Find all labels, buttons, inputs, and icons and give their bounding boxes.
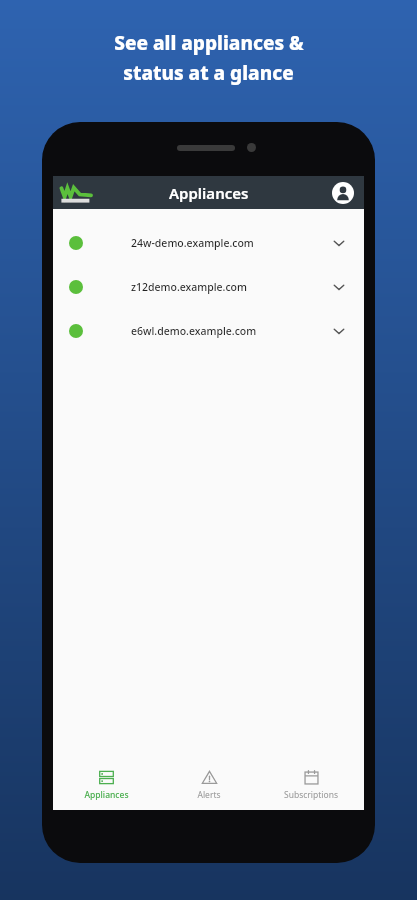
button[interactable]: Subscriptions	[261, 765, 361, 805]
button[interactable]: Logo	[59, 181, 99, 205]
staticText: Alerts	[197, 789, 221, 801]
staticText: z12demo.example.com	[131, 280, 247, 294]
staticText: status at a glance	[123, 60, 294, 86]
staticText: See all appliances &	[114, 30, 304, 56]
button[interactable]: e6wl.demo.example.com	[53, 309, 364, 353]
staticText: Appliances	[169, 183, 249, 203]
button[interactable]: 24w-demo.example.com	[53, 221, 364, 265]
button[interactable]: Appliances	[56, 765, 156, 805]
staticText: e6wl.demo.example.com	[131, 324, 257, 338]
button[interactable]: Account	[332, 182, 354, 204]
staticText: Subscriptions	[284, 789, 338, 801]
staticText: 24w-demo.example.com	[131, 236, 254, 250]
button[interactable]: z12demo.example.com	[53, 265, 364, 309]
button[interactable]: Alerts	[159, 765, 259, 805]
staticText: Appliances	[84, 789, 129, 801]
